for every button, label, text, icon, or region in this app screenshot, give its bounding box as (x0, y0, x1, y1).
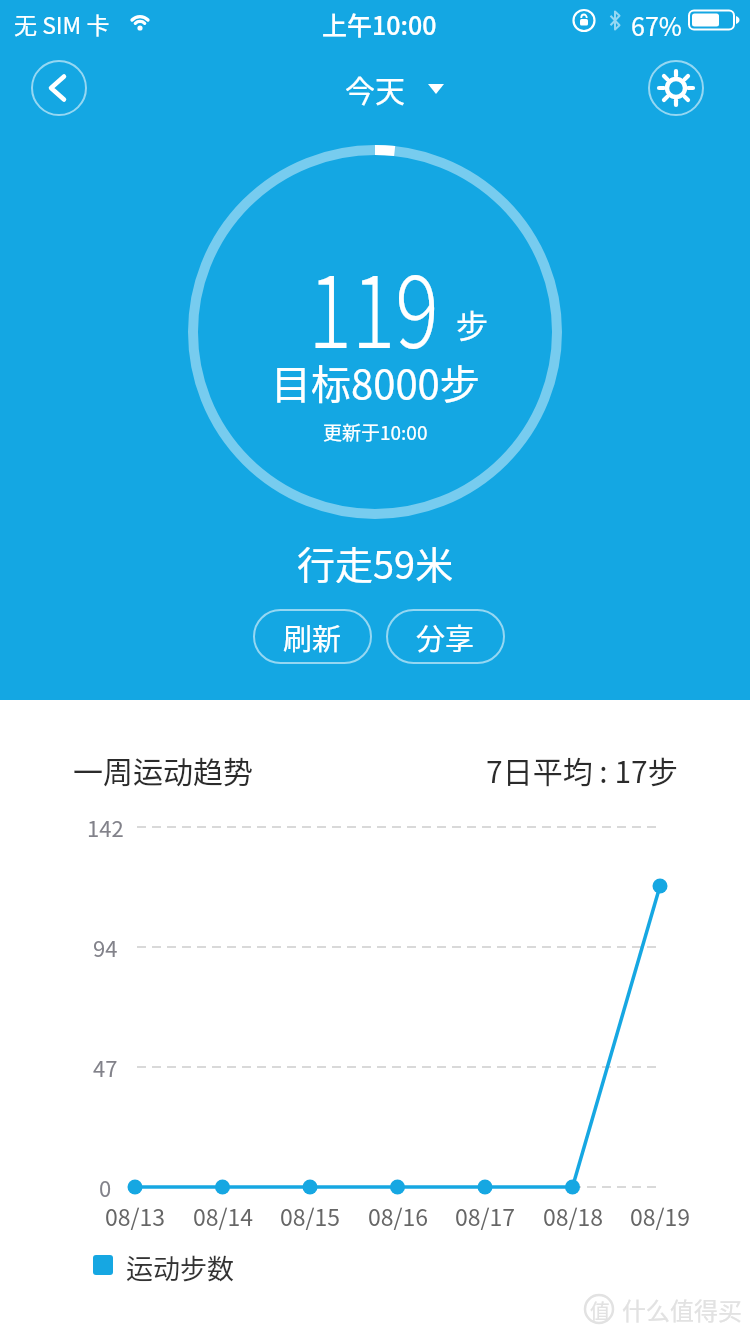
staticText: 一周运动趋势 (73, 748, 253, 791)
staticText: 值 (590, 1296, 610, 1325)
button[interactable] (31, 60, 87, 116)
staticText: 无 SIM 卡 (14, 7, 110, 40)
staticText: 今天 (345, 67, 405, 110)
staticText: 行走59米 (297, 535, 454, 583)
staticText: 上午10:00 (322, 6, 437, 42)
button[interactable]: 分享 (386, 609, 505, 664)
staticText: 分享 (416, 616, 475, 658)
staticText: 7日平均 : 17步 (486, 748, 678, 791)
staticText: 08/18 (543, 1199, 604, 1232)
staticText: 08/15 (280, 1199, 341, 1232)
staticText: 08/19 (630, 1199, 691, 1232)
staticText: 运动步数 (126, 1248, 234, 1287)
button[interactable]: 刷新 (253, 609, 372, 664)
staticText: 目标8000步 (271, 353, 480, 411)
staticText: 142 (87, 811, 124, 843)
staticText: 67% (631, 7, 682, 43)
staticText: 什么值得买 (622, 1292, 742, 1327)
staticText: 刷新 (283, 616, 342, 658)
staticText: 08/14 (193, 1199, 254, 1232)
staticText: 08/13 (105, 1199, 166, 1232)
staticText: 08/16 (368, 1199, 429, 1232)
staticText: 08/17 (455, 1199, 516, 1232)
staticText: 0 (99, 1171, 112, 1203)
button[interactable] (648, 60, 704, 116)
staticText: 119 (308, 233, 439, 376)
staticText: 更新于10:00 (323, 418, 428, 446)
staticText: 47 (93, 1051, 118, 1083)
button[interactable]: 今天 (345, 67, 444, 110)
staticText: 步 (456, 301, 489, 347)
staticText: 94 (93, 931, 118, 963)
